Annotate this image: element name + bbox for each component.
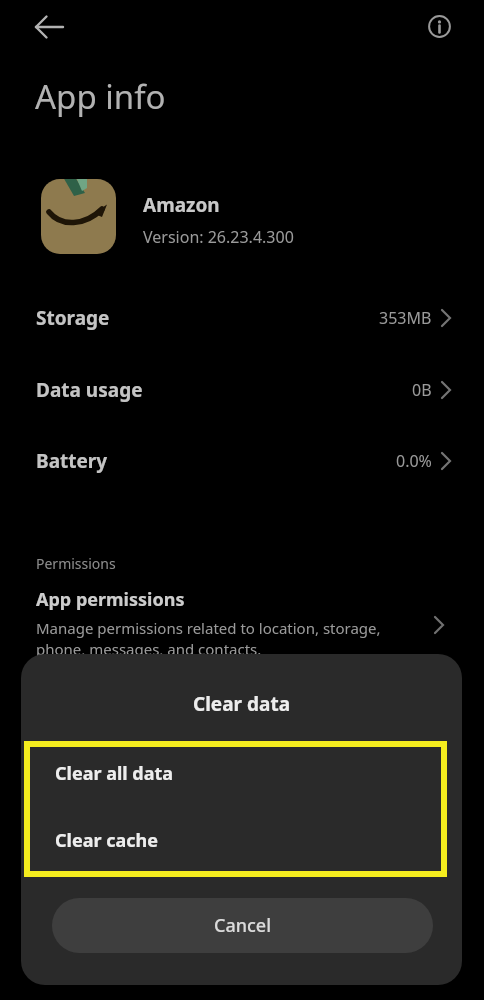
staticText: Battery bbox=[36, 448, 108, 474]
button[interactable]: Battery bbox=[0, 425, 484, 497]
staticText: 353MB bbox=[379, 307, 432, 329]
button[interactable]: Cancel bbox=[52, 898, 433, 953]
staticText: Clear data bbox=[21, 691, 462, 717]
button[interactable] bbox=[424, 11, 454, 41]
staticText: Clear all data bbox=[55, 761, 174, 786]
staticText: Manage permissions related to location, … bbox=[36, 618, 381, 660]
staticText: Cancel bbox=[214, 913, 272, 938]
button[interactable]: Clear cache bbox=[21, 811, 462, 876]
button[interactable] bbox=[30, 12, 70, 42]
button[interactable]: Storage bbox=[0, 282, 484, 354]
staticText: Data usage bbox=[36, 377, 143, 403]
staticText: Storage bbox=[36, 305, 110, 331]
button[interactable]: Data usage bbox=[0, 354, 484, 426]
staticText: Amazon bbox=[143, 192, 220, 218]
staticText: App info bbox=[35, 74, 166, 119]
staticText: 0.0% bbox=[396, 450, 432, 472]
staticText: Permissions bbox=[36, 554, 116, 573]
staticText: App permissions bbox=[36, 587, 185, 612]
staticText: Version: 26.23.4.300 bbox=[143, 226, 294, 248]
staticText: Clear cache bbox=[55, 828, 158, 853]
staticText: 0B bbox=[412, 379, 432, 401]
button[interactable]: App permissions bbox=[0, 580, 484, 660]
button[interactable]: Clear all data bbox=[21, 744, 462, 809]
